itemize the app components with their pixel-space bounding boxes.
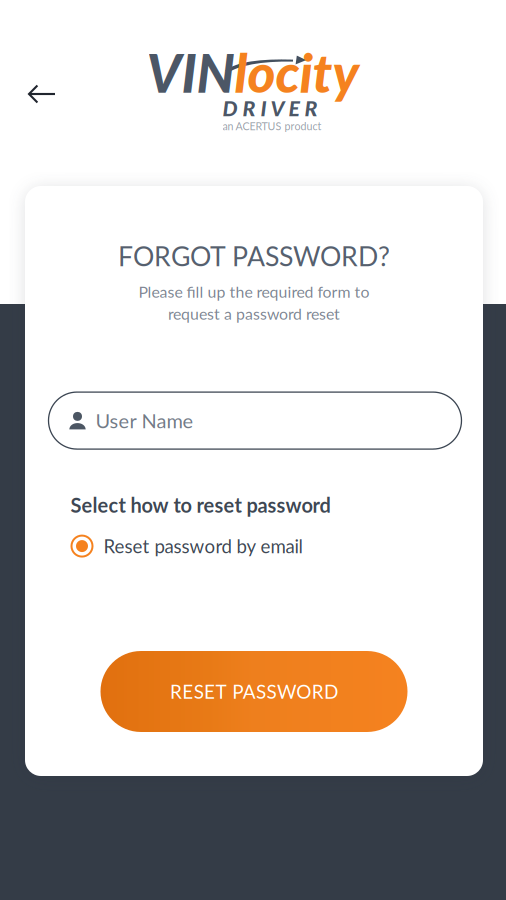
button[interactable]: RESET PASSWORD [100, 651, 407, 732]
staticText: Reset password by email [103, 535, 302, 557]
staticText: Select how to reset password [70, 493, 330, 517]
staticText: locity [234, 40, 359, 104]
button[interactable]: Back [14, 69, 70, 119]
staticText: FORGOT PASSWORD? [118, 240, 390, 272]
staticText: User Name [95, 409, 193, 433]
staticText: D R I V E R [222, 95, 317, 121]
staticText: an ACERTUS product [222, 120, 321, 132]
button[interactable]: Reset password by email [70, 533, 437, 559]
staticText: RESET PASSWORD [170, 680, 338, 703]
staticText: request a password reset [168, 304, 340, 323]
staticText: VIN [146, 40, 234, 104]
staticText: Please fill up the required form to [138, 282, 369, 301]
